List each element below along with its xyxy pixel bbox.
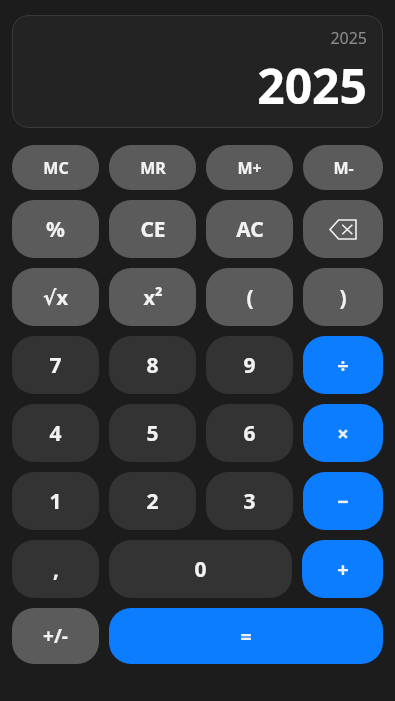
button[interactable]: MR bbox=[109, 145, 196, 190]
staticText: AC bbox=[236, 215, 264, 244]
button[interactable]: √x bbox=[12, 268, 99, 326]
staticText: 3 bbox=[243, 487, 256, 516]
button[interactable]: 0 bbox=[109, 540, 292, 598]
button[interactable]: ( bbox=[206, 268, 293, 326]
button[interactable]: M+ bbox=[206, 145, 293, 190]
staticText: 4 bbox=[49, 419, 62, 448]
button[interactable]: 8 bbox=[109, 336, 196, 394]
button[interactable]: − bbox=[303, 472, 383, 530]
staticText: ( bbox=[246, 283, 254, 312]
button[interactable]: 9 bbox=[206, 336, 293, 394]
button[interactable]: + bbox=[302, 540, 383, 598]
staticText: × bbox=[337, 420, 349, 447]
staticText: 2025 bbox=[257, 53, 367, 116]
staticText: 1 bbox=[49, 487, 62, 516]
button[interactable]: , bbox=[12, 540, 99, 598]
button[interactable]: 6 bbox=[206, 404, 293, 462]
staticText: M- bbox=[333, 157, 354, 179]
button[interactable]: % bbox=[12, 200, 99, 258]
staticText: 2 bbox=[146, 487, 159, 516]
button[interactable]: ) bbox=[303, 268, 383, 326]
button[interactable]: +/- bbox=[12, 608, 99, 664]
staticText: CE bbox=[140, 215, 166, 244]
staticText: 6 bbox=[243, 419, 256, 448]
staticText: 7 bbox=[49, 351, 62, 380]
button[interactable]: MC bbox=[12, 145, 99, 190]
staticText: M+ bbox=[237, 157, 262, 179]
button[interactable]: 5 bbox=[109, 404, 196, 462]
button[interactable]: 1 bbox=[12, 472, 99, 530]
button[interactable]: × bbox=[303, 404, 383, 462]
button[interactable]: CE bbox=[109, 200, 196, 258]
button[interactable]: = bbox=[109, 608, 383, 664]
staticText: 9 bbox=[243, 351, 256, 380]
staticText: √x bbox=[43, 284, 68, 311]
staticText: +/- bbox=[43, 623, 68, 649]
staticText: 0 bbox=[194, 555, 207, 584]
button[interactable]: 4 bbox=[12, 404, 99, 462]
button[interactable]: Backspace bbox=[303, 200, 383, 258]
staticText: MC bbox=[43, 157, 69, 179]
staticText: ) bbox=[339, 283, 347, 312]
button[interactable]: 2025 bbox=[12, 15, 383, 128]
staticText: MR bbox=[140, 157, 166, 179]
staticText: 5 bbox=[146, 419, 159, 448]
staticText: 8 bbox=[146, 351, 159, 380]
button[interactable]: 2 bbox=[109, 472, 196, 530]
staticText: , bbox=[53, 555, 59, 584]
staticText: x² bbox=[143, 284, 163, 311]
button[interactable]: 7 bbox=[12, 336, 99, 394]
staticText: − bbox=[337, 488, 349, 515]
button[interactable]: AC bbox=[206, 200, 293, 258]
staticText: % bbox=[46, 215, 65, 244]
staticText: 2025 bbox=[330, 27, 367, 49]
button[interactable]: ÷ bbox=[303, 336, 383, 394]
button[interactable]: 3 bbox=[206, 472, 293, 530]
button[interactable]: x² bbox=[109, 268, 196, 326]
button[interactable]: M- bbox=[303, 145, 383, 190]
staticText: = bbox=[240, 623, 252, 650]
staticText: + bbox=[337, 556, 349, 583]
staticText: ÷ bbox=[337, 352, 349, 379]
